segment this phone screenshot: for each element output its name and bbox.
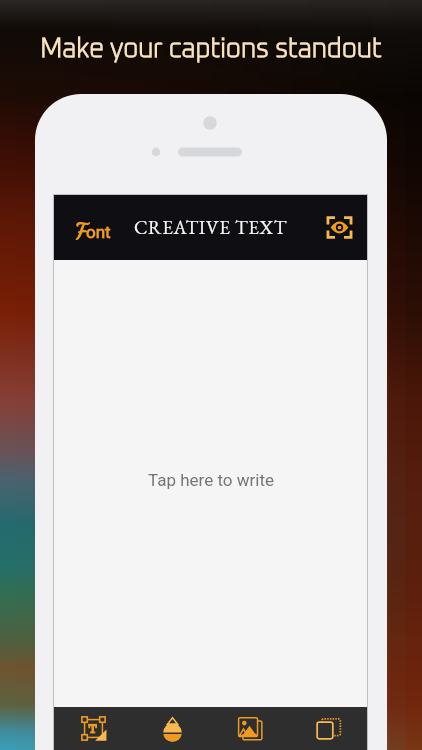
- button[interactable]: Preview: [311, 195, 367, 260]
- button[interactable]: Crop: [289, 707, 367, 750]
- staticText: ont: [86, 222, 111, 242]
- staticText: Tap here to write: [148, 470, 274, 490]
- button[interactable]: F: [54, 195, 134, 260]
- staticText: Make your captions standout: [40, 36, 382, 62]
- button[interactable]: Tap here to write: [54, 260, 367, 707]
- staticText: F: [75, 217, 88, 247]
- button[interactable]: Text: [54, 707, 133, 750]
- staticText: CREATIVE TEXT: [134, 215, 287, 240]
- button[interactable]: Image: [211, 707, 289, 750]
- button[interactable]: Color: [133, 707, 211, 750]
